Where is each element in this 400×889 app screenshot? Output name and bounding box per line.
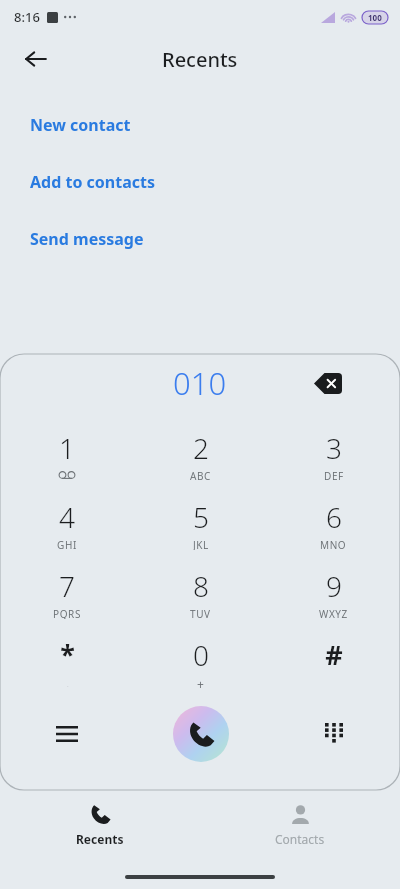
staticText: 8 xyxy=(193,567,209,605)
staticText: 7 xyxy=(59,567,75,605)
staticText: 5 xyxy=(193,498,209,536)
button[interactable]: 6 xyxy=(267,489,400,558)
staticText: GHI xyxy=(57,538,77,550)
button[interactable]: 5 xyxy=(134,489,267,558)
button[interactable]: Contacts xyxy=(200,796,400,853)
button[interactable]: 9 xyxy=(267,558,400,627)
staticText: Add to contacts xyxy=(30,171,155,193)
staticText: + xyxy=(197,676,205,688)
button[interactable]: Backspace xyxy=(306,361,350,405)
staticText: 100 xyxy=(368,12,382,23)
staticText: 2 xyxy=(193,429,209,467)
staticText: 010 xyxy=(173,362,227,404)
staticText: 8:16 xyxy=(14,8,40,26)
button[interactable]: Menu xyxy=(43,710,91,758)
staticText: ABC xyxy=(190,469,212,481)
button[interactable]: 0 xyxy=(134,627,267,696)
staticText: MNO xyxy=(320,538,347,550)
staticText: WXYZ xyxy=(319,607,348,619)
button[interactable]: 4 xyxy=(0,489,134,558)
button[interactable]: Call xyxy=(173,706,229,762)
button[interactable]: 8 xyxy=(134,558,267,627)
button[interactable]: Recents xyxy=(0,796,200,853)
staticText: DEF xyxy=(324,469,344,481)
button[interactable]: Send message xyxy=(0,224,400,254)
button[interactable]: # xyxy=(267,627,400,696)
staticText: 4 xyxy=(59,498,75,536)
button[interactable]: Dialpad xyxy=(310,710,358,758)
button[interactable]: 3 xyxy=(267,420,400,489)
button[interactable]: 1 xyxy=(0,420,134,489)
staticText: PQRS xyxy=(53,607,81,619)
staticText: 6 xyxy=(326,498,342,536)
button[interactable]: 2 xyxy=(134,420,267,489)
staticText: 0 xyxy=(193,636,209,674)
staticText: Contacts xyxy=(275,831,325,847)
button[interactable]: New contact xyxy=(0,110,400,140)
button[interactable]: * xyxy=(0,627,134,696)
staticText: # xyxy=(325,636,343,673)
button[interactable]: Add to contacts xyxy=(0,167,400,197)
button[interactable]: Back xyxy=(12,35,60,83)
staticText: TUV xyxy=(190,607,211,619)
button[interactable]: 7 xyxy=(0,558,134,627)
staticText: 3 xyxy=(326,429,342,467)
staticText: 1 xyxy=(59,429,75,467)
staticText: JKL xyxy=(193,538,209,550)
staticText: Send message xyxy=(30,228,144,250)
staticText: * xyxy=(60,636,75,673)
staticText: Recents xyxy=(76,831,124,847)
staticText: New contact xyxy=(30,114,131,136)
staticText: 9 xyxy=(326,567,342,605)
staticText: Recents xyxy=(162,46,238,73)
